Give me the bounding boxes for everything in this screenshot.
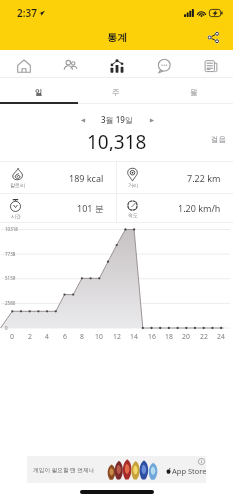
staticText: 월 [190, 88, 198, 97]
button[interactable]: News [187, 52, 233, 80]
button[interactable]: Chat [140, 52, 187, 80]
staticText: 22 [199, 332, 209, 341]
button[interactable]: 게임이 필요할 땐 언제나 [27, 456, 206, 483]
staticText: 2:37 [17, 6, 37, 20]
button[interactable]: 시간 [0, 194, 116, 222]
button[interactable]: 칼로리 [0, 162, 116, 193]
button[interactable]: 거리 [117, 162, 233, 193]
staticText: 20 [181, 332, 191, 341]
staticText: 일 [35, 88, 43, 97]
staticText: 주 [112, 88, 120, 97]
staticText: 걸음 [211, 135, 226, 144]
staticText: 189 kcal [69, 172, 104, 184]
staticText: 18 [164, 332, 174, 341]
button[interactable]: 일 [0, 80, 77, 106]
staticText: 10 [94, 332, 104, 341]
button[interactable]: Next day [145, 114, 159, 126]
button[interactable]: Statistics [93, 52, 140, 80]
button[interactable]: 주 [77, 80, 155, 106]
staticText: 7738 [5, 251, 16, 257]
button[interactable]: Ad information [198, 458, 205, 465]
staticText: 속도 [128, 212, 138, 218]
staticText: 8 [77, 332, 87, 341]
staticText: 0 [5, 325, 8, 331]
staticText: 시간 [11, 213, 21, 219]
staticText: 7.22 km [187, 172, 221, 184]
staticText: 10,318 [87, 129, 147, 151]
staticText: 통계 [107, 31, 127, 44]
staticText: 0 [7, 332, 17, 341]
staticText: 16 [147, 332, 157, 341]
button[interactable]: 속도 [117, 194, 233, 222]
staticText: 12 [112, 332, 122, 341]
button[interactable]: Friends [47, 52, 93, 80]
staticText: 10318 [5, 226, 18, 232]
staticText: 5159 [5, 275, 16, 281]
staticText: 24 [216, 332, 226, 341]
staticText: 6 [60, 332, 70, 341]
staticText: 게임이 필요할 땐 언제나 [33, 466, 95, 474]
button[interactable]: Previous day [76, 114, 90, 126]
staticText: 2 [25, 332, 35, 341]
staticText: 1.20 km/h [178, 202, 221, 214]
button[interactable]: Share [203, 27, 224, 48]
staticText: App Store [172, 466, 207, 476]
button[interactable]: 월 [155, 80, 233, 106]
staticText: 14 [129, 332, 139, 341]
button[interactable]: Home [1, 52, 47, 80]
staticText: 거리 [128, 182, 138, 188]
staticText: 2580 [5, 300, 16, 306]
staticText: 101 분 [77, 202, 104, 214]
staticText: 칼로리 [10, 182, 25, 188]
staticText: 3월 19일 [101, 114, 133, 125]
staticText: 4 [42, 332, 52, 341]
